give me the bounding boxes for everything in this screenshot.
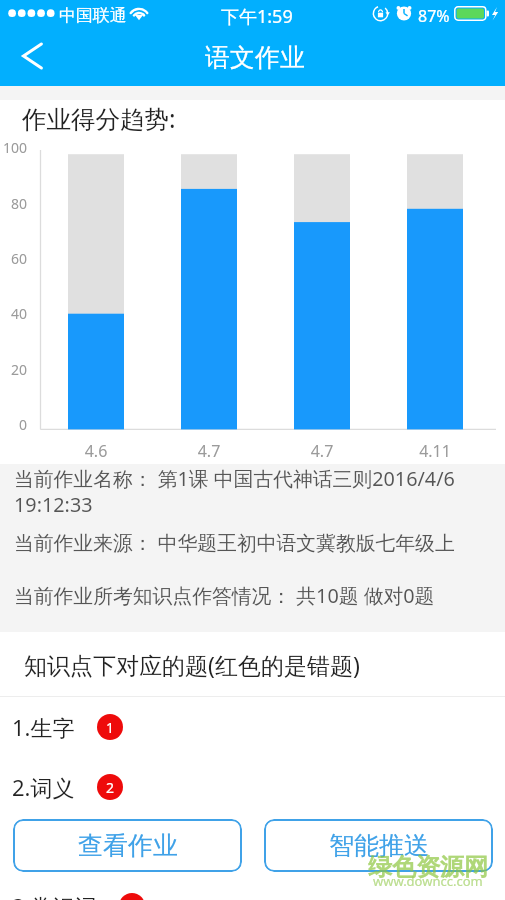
staticText: 作业得分趋势: bbox=[22, 102, 176, 135]
staticText: 1 bbox=[106, 718, 115, 737]
staticText: 100 bbox=[0, 138, 27, 157]
button[interactable]: 2.词义 bbox=[0, 757, 505, 817]
staticText: 1.生字 bbox=[12, 712, 75, 742]
staticText: 20 bbox=[0, 360, 27, 379]
staticText: 2.词义 bbox=[12, 772, 75, 802]
button[interactable]: 查看作业 bbox=[13, 819, 242, 872]
staticText: 2 bbox=[106, 778, 115, 797]
button[interactable]: 当前作业名称： 第1课 中国古代神话三则2016/4/6 19:12:33 bbox=[14, 465, 492, 517]
button[interactable]: 智能推送 bbox=[264, 819, 493, 872]
staticText: 0 bbox=[0, 415, 27, 434]
staticText: 当前作业名称： 第1课 中国古代神话三则2016/4/6 19:12:33 bbox=[14, 465, 492, 517]
staticText: 40 bbox=[0, 304, 27, 323]
staticText: 4.6 bbox=[56, 440, 136, 462]
staticText: 下午1:59 bbox=[221, 4, 293, 29]
staticText: 查看作业 bbox=[78, 830, 178, 861]
staticText: 80 bbox=[0, 194, 27, 213]
staticText: 知识点下对应的题(红色的是错题) bbox=[24, 649, 360, 680]
staticText: 4.11 bbox=[395, 440, 475, 462]
staticText: 当前作业所考知识点作答情况： 共10题 做对0题 bbox=[14, 582, 435, 609]
button[interactable]: Back bbox=[4, 30, 56, 86]
button[interactable]: 当前作业来源： 中华题王初中语文冀教版七年级上 bbox=[14, 529, 492, 556]
staticText: 智能推送 bbox=[329, 830, 429, 861]
staticText: 3.常识词 bbox=[12, 891, 97, 900]
button[interactable]: 当前作业所考知识点作答情况： 共10题 做对0题 bbox=[14, 582, 492, 609]
staticText: 87% bbox=[418, 5, 450, 27]
staticText: 中国联通 bbox=[59, 5, 127, 26]
staticText: 60 bbox=[0, 249, 27, 268]
staticText: 当前作业来源： 中华题王初中语文冀教版七年级上 bbox=[14, 529, 455, 556]
button[interactable]: 3.常识词 bbox=[0, 876, 505, 900]
button[interactable]: 1.生字 bbox=[0, 697, 505, 757]
staticText: 语文作业 bbox=[205, 42, 305, 73]
staticText: 绿色资源网 bbox=[368, 852, 488, 882]
staticText: 4.7 bbox=[282, 440, 362, 462]
staticText: www.downcc.com bbox=[373, 872, 483, 890]
staticText: 4.7 bbox=[169, 440, 249, 462]
